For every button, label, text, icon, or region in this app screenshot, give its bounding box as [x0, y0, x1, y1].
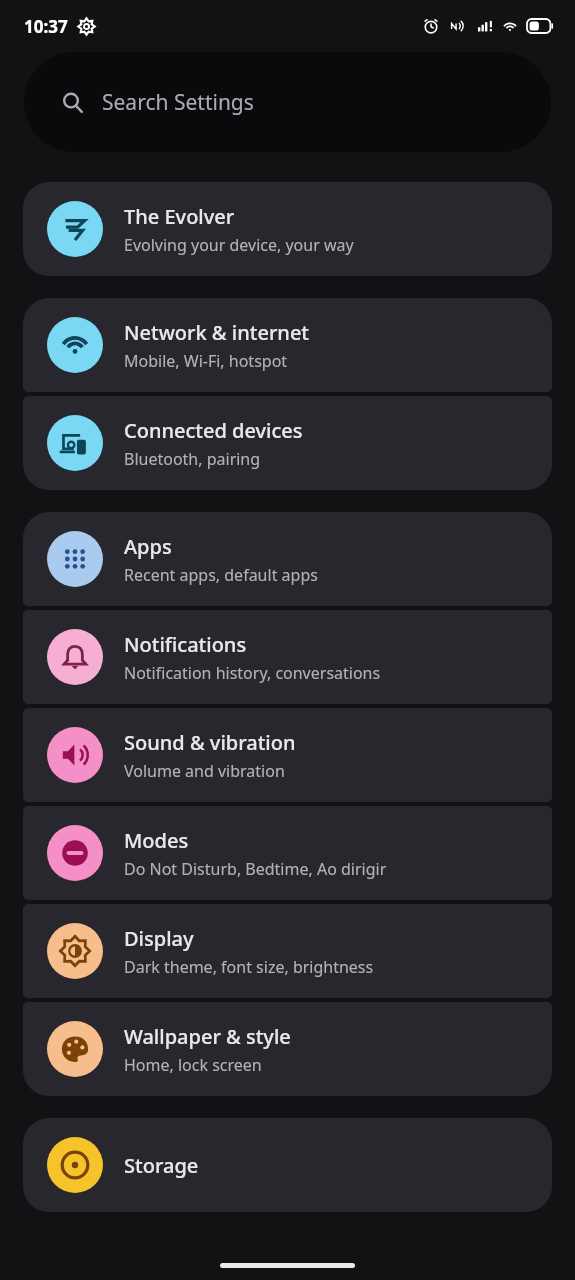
staticText: Notification history, conversations [124, 662, 381, 684]
staticText: Notifications [124, 631, 247, 658]
staticText: Dark theme, font size, brightness [124, 956, 374, 978]
button[interactable]: Sound & vibration [23, 708, 552, 802]
button[interactable]: Connected devices [23, 396, 552, 490]
staticText: Bluetooth, pairing [124, 448, 261, 470]
button[interactable]: Wallpaper & style [23, 1002, 552, 1096]
staticText: Wallpaper & style [124, 1023, 291, 1050]
button[interactable]: Display [23, 904, 552, 998]
button[interactable]: Notifications [23, 610, 552, 704]
staticText: Evolving your device, your way [124, 234, 354, 256]
staticText: Network & internet [124, 319, 310, 346]
staticText: Do Not Disturb, Bedtime, Ao dirigir [124, 858, 387, 880]
staticText: Recent apps, default apps [124, 564, 318, 586]
staticText: Home, lock screen [124, 1054, 262, 1076]
button[interactable]: Network & internet [23, 298, 552, 392]
button[interactable]: Storage [23, 1118, 552, 1212]
staticText: Apps [124, 533, 172, 560]
button[interactable]: Apps [23, 512, 552, 606]
staticText: Display [124, 925, 194, 952]
button[interactable]: Modes [23, 806, 552, 900]
staticText: 10:37 [24, 15, 68, 38]
staticText: The Evolver [124, 203, 235, 230]
other: Settings [78, 18, 95, 35]
staticText: Modes [124, 827, 189, 854]
staticText: Sound & vibration [124, 729, 296, 756]
staticText: Connected devices [124, 417, 303, 444]
staticText: Search Settings [102, 88, 254, 117]
button[interactable]: Search Settings [24, 52, 551, 152]
staticText: Storage [124, 1152, 199, 1179]
staticText: Volume and vibration [124, 760, 285, 782]
staticText: Mobile, Wi-Fi, hotspot [124, 350, 288, 372]
button[interactable]: The Evolver [23, 182, 552, 276]
